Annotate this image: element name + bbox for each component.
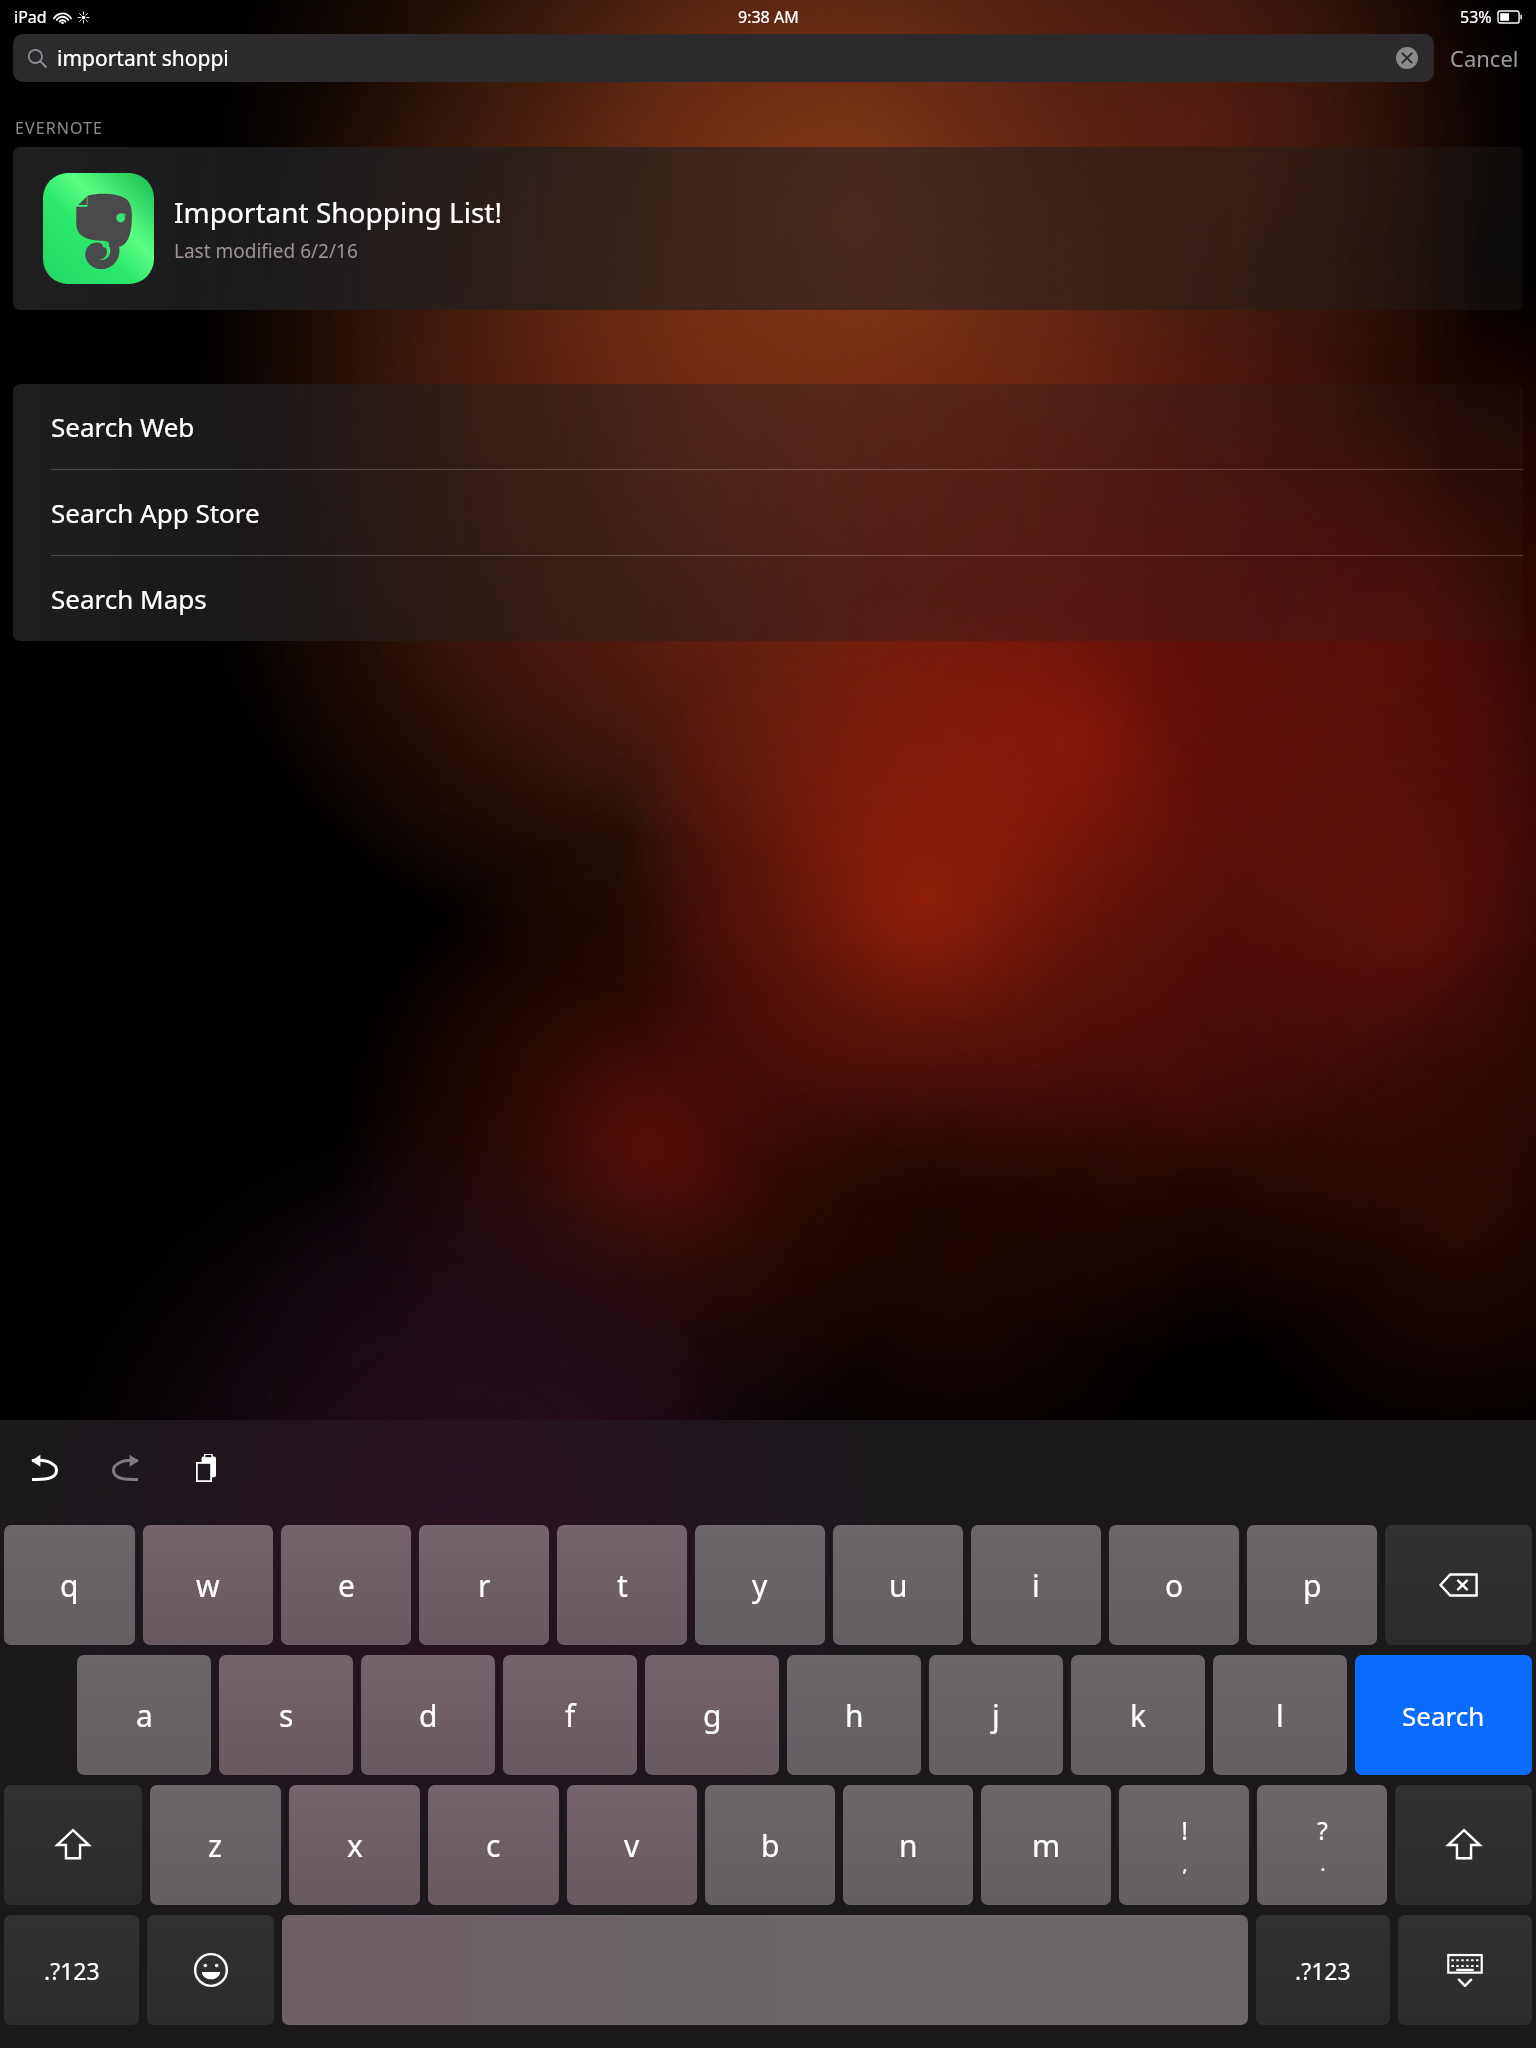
button[interactable]: v — [567, 1785, 697, 1905]
button[interactable]: Hide keyboard — [1398, 1915, 1532, 2025]
button[interactable]: Redo — [98, 1442, 154, 1498]
staticText: Search App Store — [51, 495, 260, 530]
button[interactable]: j — [929, 1655, 1063, 1775]
button[interactable]: e — [281, 1525, 411, 1645]
button[interactable]: t — [557, 1525, 687, 1645]
button[interactable]: x — [289, 1785, 420, 1905]
staticText: r — [478, 1565, 491, 1606]
staticText: o — [1165, 1565, 1184, 1606]
button[interactable]: Search Web — [13, 384, 1523, 470]
button[interactable]: n — [843, 1785, 973, 1905]
button[interactable]: d — [361, 1655, 495, 1775]
staticText: z — [208, 1825, 223, 1866]
staticText: x — [347, 1825, 363, 1866]
button[interactable]: r — [419, 1525, 549, 1645]
button[interactable]: c — [428, 1785, 559, 1905]
staticText: EVERNOTE — [15, 117, 104, 139]
button[interactable]: Emoji — [147, 1915, 274, 2025]
button[interactable]: Search — [1355, 1655, 1532, 1775]
staticText: u — [889, 1565, 908, 1606]
staticText: b — [761, 1825, 780, 1866]
button[interactable]: p — [1247, 1525, 1377, 1645]
staticText: c — [486, 1825, 501, 1866]
staticText: ! — [1181, 1813, 1188, 1847]
button[interactable]: s — [219, 1655, 353, 1775]
staticText: f — [565, 1695, 576, 1736]
button[interactable]: l — [1213, 1655, 1347, 1775]
button[interactable]: y — [695, 1525, 825, 1645]
staticText: e — [338, 1565, 355, 1606]
staticText: n — [899, 1825, 918, 1866]
staticText: j — [992, 1695, 1000, 1736]
button[interactable]: Search App Store — [13, 470, 1523, 556]
button[interactable]: i — [971, 1525, 1101, 1645]
button[interactable]: k — [1071, 1655, 1205, 1775]
button[interactable]: Clear text — [1394, 45, 1420, 71]
staticText: t — [617, 1565, 628, 1606]
button[interactable]: z — [150, 1785, 281, 1905]
staticText: , — [1182, 1850, 1188, 1877]
button[interactable]: Backspace — [1385, 1525, 1532, 1645]
staticText: q — [60, 1565, 79, 1606]
staticText: a — [136, 1695, 153, 1736]
button[interactable]: g — [645, 1655, 779, 1775]
staticText: ? — [1317, 1813, 1328, 1847]
button[interactable]: q — [4, 1525, 135, 1645]
button[interactable]: .?123 — [1256, 1915, 1390, 2025]
staticText: w — [196, 1565, 220, 1606]
staticText: d — [419, 1695, 438, 1736]
button[interactable]: Cancel — [1434, 43, 1523, 73]
button[interactable]: important shoppi — [13, 34, 1434, 82]
button[interactable]: Undo — [16, 1442, 72, 1498]
button[interactable]: f — [503, 1655, 637, 1775]
staticText: .?123 — [1295, 1955, 1351, 1986]
button[interactable]: Shift — [1395, 1785, 1532, 1905]
staticText: 53% — [1460, 6, 1492, 28]
staticText: g — [703, 1695, 722, 1736]
button[interactable]: a — [77, 1655, 211, 1775]
button[interactable]: b — [705, 1785, 835, 1905]
staticText: m — [1032, 1825, 1061, 1866]
button[interactable]: o — [1109, 1525, 1239, 1645]
staticText: l — [1276, 1695, 1284, 1736]
button[interactable]: m — [981, 1785, 1111, 1905]
button[interactable]: Paste — [180, 1442, 236, 1498]
staticText: Last modified 6/2/16 — [174, 238, 358, 264]
staticText: p — [1303, 1565, 1322, 1606]
button[interactable]: u — [833, 1525, 963, 1645]
button[interactable]: Search Maps — [13, 556, 1523, 641]
staticText: v — [624, 1825, 640, 1866]
staticText: iPad — [14, 6, 47, 28]
staticText: Search Web — [51, 409, 195, 444]
button[interactable]: ? — [1257, 1785, 1387, 1905]
staticText: s — [279, 1695, 294, 1736]
button[interactable]: Important Shopping List! — [13, 147, 1523, 310]
staticText: 9:38 AM — [738, 6, 799, 28]
button[interactable]: Shift — [4, 1785, 142, 1905]
staticText: . — [1320, 1850, 1326, 1877]
staticText: .?123 — [44, 1955, 100, 1986]
staticText: Search — [1402, 1698, 1485, 1733]
button[interactable]: w — [143, 1525, 273, 1645]
staticText: important shoppi — [57, 44, 229, 73]
button[interactable]: h — [787, 1655, 921, 1775]
staticText: Search Maps — [51, 581, 207, 616]
staticText: h — [845, 1695, 864, 1736]
button[interactable]: .?123 — [4, 1915, 139, 2025]
staticText: y — [752, 1565, 768, 1606]
staticText: k — [1130, 1695, 1147, 1736]
staticText: Important Shopping List! — [174, 193, 502, 231]
button[interactable]: ! — [1119, 1785, 1249, 1905]
staticText: Cancel — [1450, 43, 1519, 73]
staticText: i — [1032, 1565, 1040, 1606]
